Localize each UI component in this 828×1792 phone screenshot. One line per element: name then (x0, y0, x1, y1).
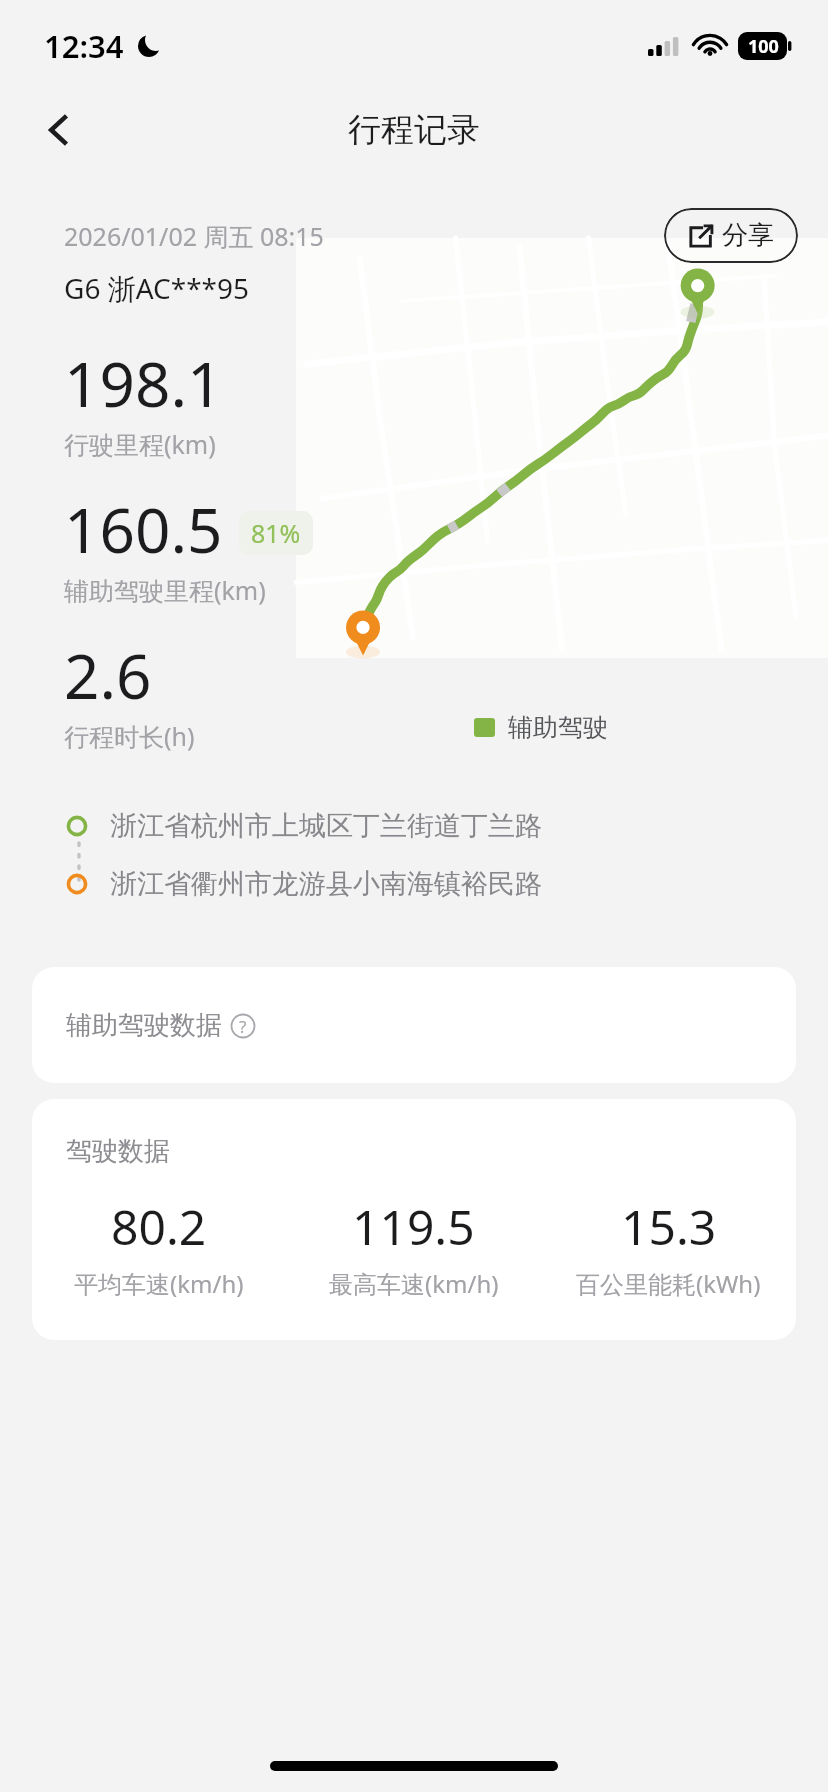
button[interactable]: 浙江省杭州市上城区丁兰街道丁兰路 (0, 809, 828, 843)
staticText: 行驶里程(km) (64, 427, 216, 461)
staticText: 辅助驾驶里程(km) (64, 573, 266, 607)
staticText: 2.6 (64, 633, 152, 717)
staticText: 浙江省衢州市龙游县小南海镇裕民路 (110, 867, 542, 901)
staticText: 160.5 (64, 487, 223, 571)
staticText: 百公里能耗(kWh) (576, 1267, 761, 1300)
staticText: 最高车速(km/h) (329, 1267, 499, 1300)
staticText: 辅助驾驶 (508, 712, 608, 743)
staticText: 198.1 (64, 341, 223, 425)
staticText: 100 (748, 34, 779, 59)
staticText: 2026/01/02 周五 08:15 (64, 219, 324, 253)
button[interactable]: 驾驶数据 (32, 1099, 796, 1340)
button[interactable]: 辅助驾驶数据 (32, 967, 796, 1083)
staticText: 行程记录 (348, 109, 480, 151)
staticText: 浙江省杭州市上城区丁兰街道丁兰路 (110, 809, 542, 843)
staticText: 119.5 (352, 1194, 475, 1259)
staticText: 行程时长(h) (64, 719, 195, 753)
staticText: 80.2 (111, 1194, 207, 1259)
staticText: 平均车速(km/h) (74, 1267, 244, 1300)
button[interactable]: 浙江省衢州市龙游县小南海镇裕民路 (0, 867, 828, 901)
staticText: 辅助驾驶数据 (66, 1009, 222, 1042)
staticText: G6 浙AC***95 (64, 269, 250, 307)
staticText: 分享 (722, 219, 774, 252)
button[interactable]: Back (26, 98, 90, 162)
staticText: 驾驶数据 (66, 1135, 170, 1168)
staticText: ? (239, 1015, 247, 1038)
staticText: 15.3 (621, 1194, 717, 1259)
staticText: 81% (251, 516, 301, 550)
staticText: 12:34 (44, 25, 124, 67)
button[interactable]: 分享 (664, 208, 798, 263)
